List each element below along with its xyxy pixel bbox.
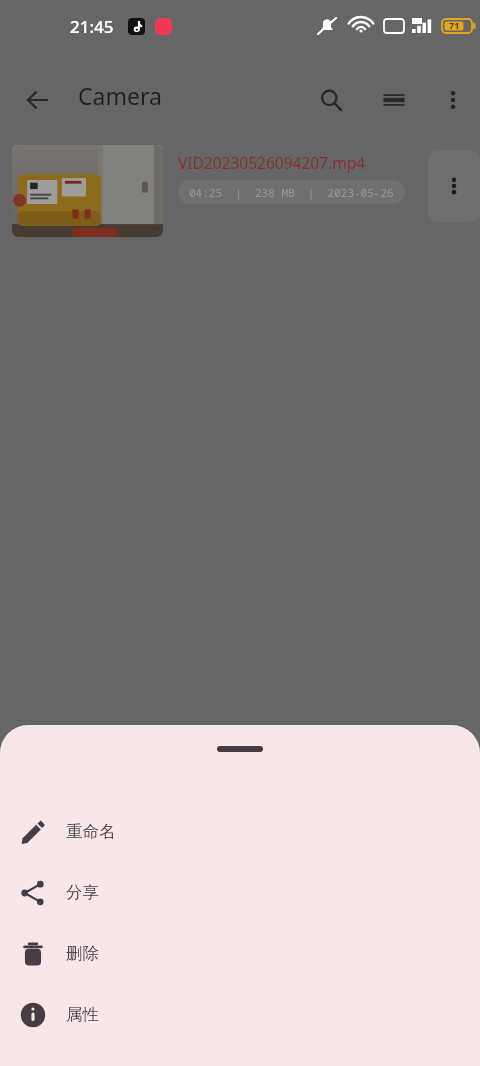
button[interactable]: File options	[428, 150, 480, 222]
button[interactable]: 删除	[0, 923, 480, 984]
staticText: 重命名	[66, 821, 116, 842]
button[interactable]: VID20230526094207.mp4	[0, 133, 480, 243]
staticText: VID20230526094207.mp4	[178, 152, 366, 173]
button[interactable]: Back	[14, 77, 60, 123]
staticText: 分享	[66, 882, 99, 903]
button[interactable]: 属性	[0, 984, 480, 1045]
staticText: 21:45	[70, 15, 114, 38]
button[interactable]: 重命名	[0, 801, 480, 862]
staticText: 删除	[66, 943, 99, 964]
staticText: Camera	[78, 80, 162, 111]
button[interactable]: Search	[308, 77, 354, 123]
staticText: 71	[449, 19, 460, 31]
button[interactable]: Change view	[371, 77, 417, 123]
button[interactable]: 分享	[0, 862, 480, 923]
staticText: 04:25 | 238 MB | 2023-05-26	[189, 185, 394, 200]
button[interactable]: More options	[430, 77, 476, 123]
staticText: 属性	[66, 1004, 99, 1025]
